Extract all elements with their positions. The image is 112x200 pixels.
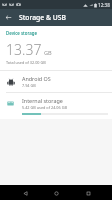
- staticText: Storage & USB: [19, 13, 66, 22]
- staticText: Device storage: [6, 30, 37, 36]
- button[interactable]: Navigate up: [2, 11, 15, 24]
- staticText: 7.94 GB: [22, 83, 36, 88]
- staticText: 13.37: [6, 40, 42, 59]
- button[interactable]: Android OS: [0, 71, 112, 92]
- staticText: Total used of 32.00 GB: [6, 60, 46, 65]
- staticText: 12:38: [98, 2, 110, 8]
- staticText: Internal storage: [22, 97, 63, 104]
- staticText: Android OS: [22, 75, 51, 82]
- button[interactable]: Home: [49, 186, 63, 200]
- staticText: 5.42 GB used of 24.06 GB: [22, 105, 67, 110]
- staticText: GB: [44, 49, 52, 57]
- button[interactable]: Back: [18, 186, 32, 200]
- button[interactable]: Recents: [81, 186, 95, 200]
- button[interactable]: Internal storage: [0, 93, 112, 119]
